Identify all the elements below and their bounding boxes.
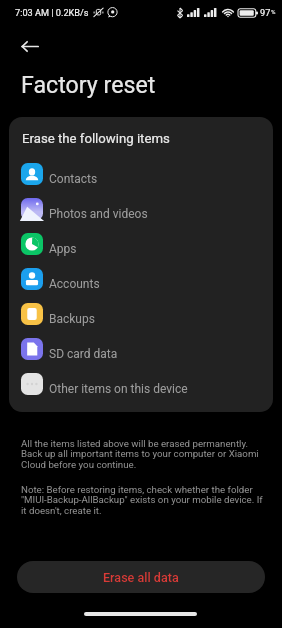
staticText: Apps bbox=[49, 242, 77, 256]
staticText: Erase the following items bbox=[22, 131, 170, 146]
staticText: Photos and videos bbox=[49, 207, 148, 221]
button[interactable]: Backups bbox=[9, 296, 273, 331]
staticText: 97 bbox=[260, 7, 271, 18]
staticText: SD card data bbox=[49, 347, 118, 361]
staticText: All the items listed above will be erase… bbox=[21, 438, 270, 471]
button[interactable]: SD card data bbox=[9, 331, 273, 366]
button[interactable]: Apps bbox=[9, 226, 273, 261]
button[interactable]: Accounts bbox=[9, 261, 273, 296]
button[interactable]: Contacts bbox=[9, 156, 273, 191]
staticText: Other items on this device bbox=[49, 382, 188, 396]
button[interactable]: Photos and videos bbox=[9, 191, 273, 226]
staticText: % bbox=[271, 8, 276, 15]
staticText: Erase all data bbox=[103, 570, 179, 585]
button[interactable]: Erase all data bbox=[17, 561, 265, 593]
staticText: Note: Before restoring items, check whet… bbox=[21, 484, 270, 517]
staticText: 7:03 AM | 0.2KB/s bbox=[15, 7, 89, 18]
staticText: Contacts bbox=[49, 172, 98, 186]
button[interactable]: Back bbox=[15, 31, 45, 61]
staticText: Backups bbox=[49, 312, 95, 326]
staticText: Accounts bbox=[49, 277, 100, 291]
button[interactable]: Other items on this device bbox=[9, 366, 273, 401]
staticText: Factory reset bbox=[21, 71, 156, 98]
